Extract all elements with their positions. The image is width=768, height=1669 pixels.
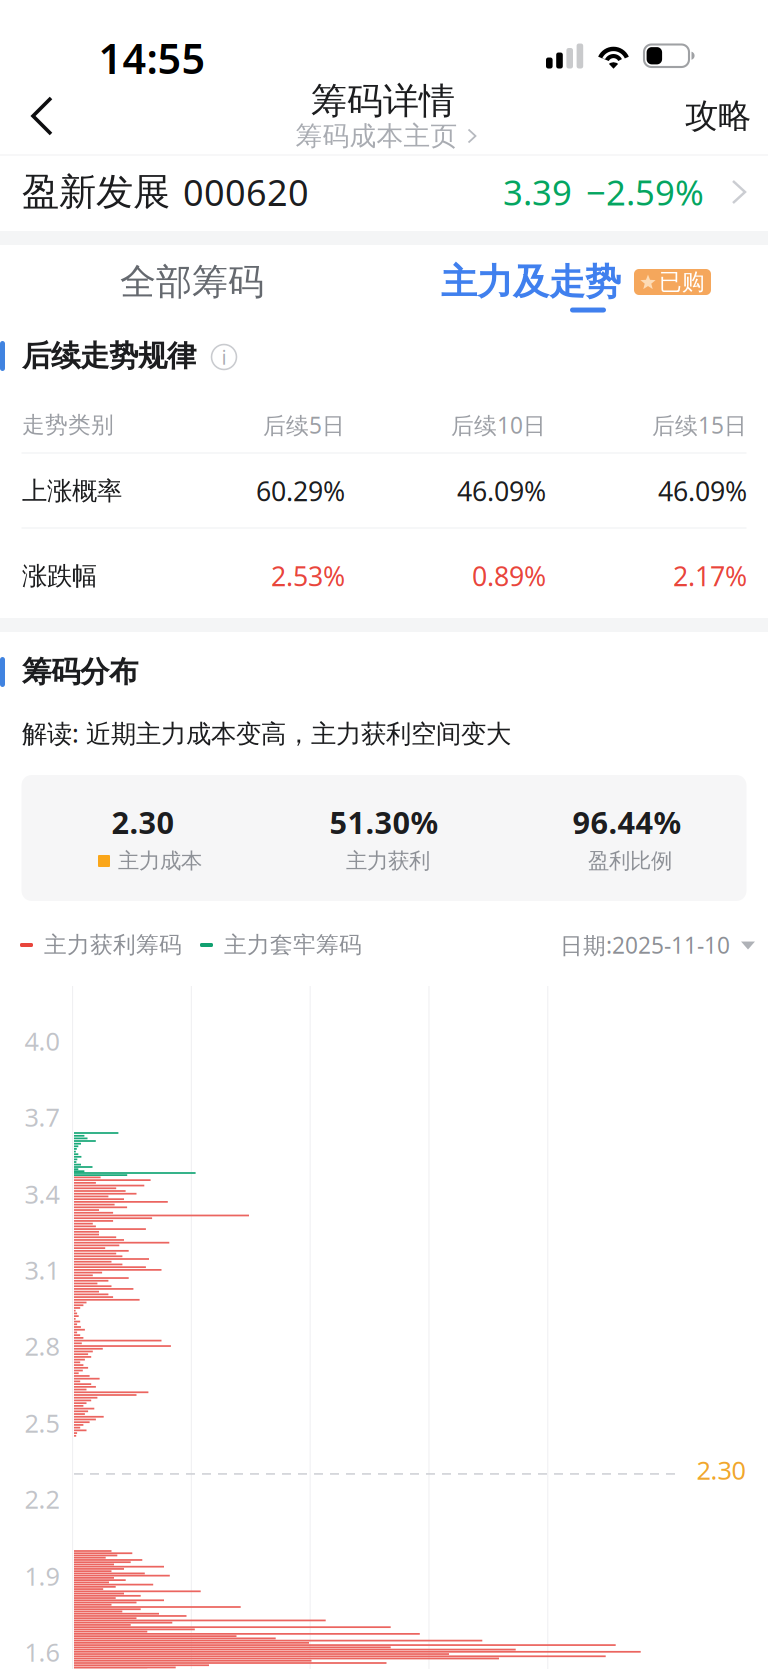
- staticText: 1.9: [24, 1559, 59, 1593]
- staticText: 2.8: [24, 1329, 59, 1363]
- staticText: 2.17%: [673, 558, 747, 594]
- staticText: 主力成本: [118, 848, 202, 874]
- button[interactable]: 攻略: [673, 83, 763, 148]
- staticText: 3.39: [503, 169, 572, 215]
- staticText: 2.30: [111, 802, 174, 842]
- staticText: 46.09%: [457, 473, 546, 509]
- staticText: 已购: [659, 268, 705, 296]
- staticText: 46.09%: [658, 473, 747, 509]
- staticText: 涨跌幅: [22, 560, 97, 591]
- staticText: 筹码详情: [311, 79, 455, 123]
- button[interactable]: Back: [16, 82, 68, 150]
- staticText: 筹码分布: [22, 654, 138, 690]
- staticText: i: [221, 344, 226, 370]
- staticText: 2.5: [24, 1406, 59, 1440]
- staticText: 0.89%: [472, 558, 546, 594]
- staticText: 主力及走势: [441, 260, 621, 304]
- staticText: 96.44%: [572, 802, 681, 842]
- staticText: 主力套牢筹码: [224, 931, 362, 959]
- staticText: 日期:2025-11-10: [560, 930, 730, 960]
- staticText: 后续10日: [451, 410, 546, 440]
- staticText: 攻略: [685, 95, 751, 136]
- button[interactable]: 主力及走势: [384, 244, 768, 320]
- staticText: 51.30%: [329, 802, 438, 842]
- staticText: 后续走势规律: [22, 338, 196, 374]
- staticText: 解读: 近期主力成本变高，主力获利空间变大: [22, 716, 511, 750]
- staticText: 14:55: [98, 31, 205, 85]
- staticText: 2.2: [24, 1482, 59, 1516]
- staticText: 盈新发展: [22, 169, 170, 215]
- staticText: 1.6: [24, 1635, 59, 1669]
- staticText: 3.7: [24, 1100, 59, 1134]
- staticText: 4.0: [24, 1024, 59, 1058]
- staticText: 后续15日: [652, 410, 747, 440]
- staticText: 上涨概率: [22, 475, 122, 506]
- staticText: −2.59%: [586, 169, 704, 215]
- staticText: 主力获利: [346, 848, 430, 874]
- staticText: 2.30: [696, 1453, 745, 1487]
- staticText: 3.1: [24, 1253, 59, 1287]
- staticText: 全部筹码: [120, 260, 264, 304]
- staticText: 后续5日: [263, 410, 345, 440]
- staticText: 60.29%: [256, 473, 345, 509]
- staticText: 主力获利筹码: [44, 931, 182, 959]
- button[interactable]: 盈新发展: [0, 154, 768, 230]
- staticText: 000620: [183, 168, 309, 216]
- button[interactable]: 全部筹码: [0, 244, 384, 320]
- staticText: 走势类别: [22, 411, 114, 439]
- button[interactable]: 筹码成本主页: [295, 116, 476, 156]
- staticText: 筹码成本主页: [295, 120, 457, 152]
- staticText: 2.53%: [271, 558, 345, 594]
- staticText: 3.4: [24, 1177, 59, 1211]
- staticText: 盈利比例: [588, 848, 672, 874]
- button[interactable]: 日期:2025-11-10: [560, 922, 754, 968]
